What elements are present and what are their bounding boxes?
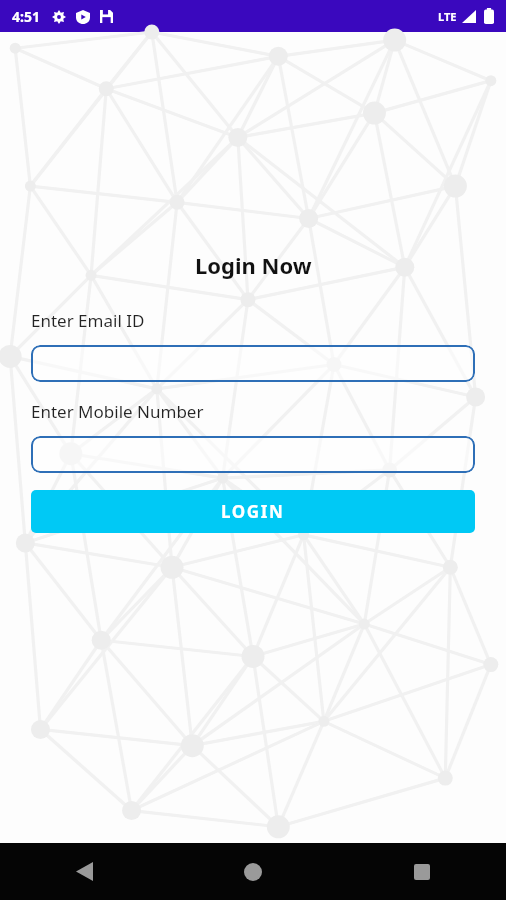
button[interactable]: Back <box>0 843 168 900</box>
button[interactable]: Email input <box>31 345 475 382</box>
staticText: Login Now <box>195 250 312 280</box>
button[interactable]: Home <box>168 843 337 900</box>
staticText: Enter Email ID <box>31 309 145 332</box>
button[interactable]: Recent apps <box>337 843 506 900</box>
staticText: Enter Mobile Number <box>31 400 204 423</box>
button[interactable]: Mobile number input <box>31 436 475 473</box>
staticText: 4:51 <box>12 7 40 26</box>
button[interactable]: LOGIN <box>31 490 475 533</box>
staticText: LTE <box>438 9 457 24</box>
staticText: LOGIN <box>221 500 285 523</box>
